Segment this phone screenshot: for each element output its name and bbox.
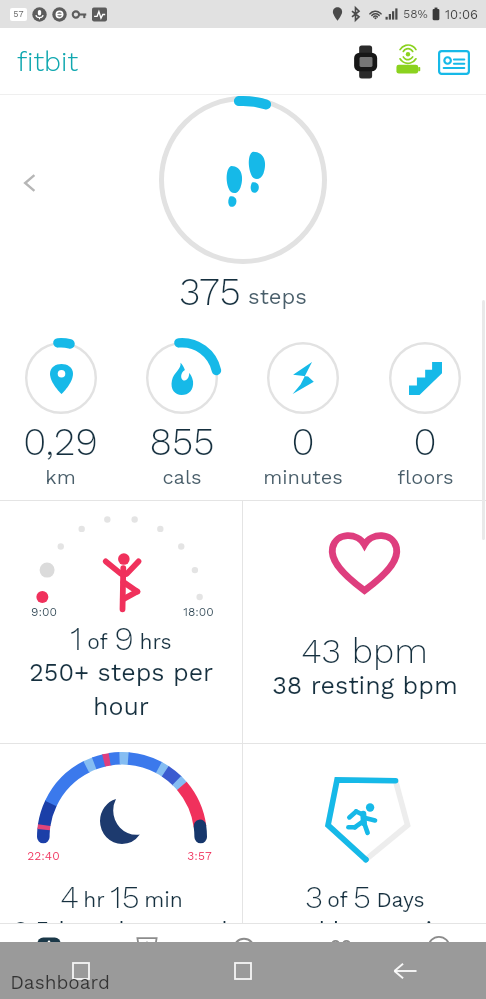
staticText: 0,29 [23, 420, 98, 465]
staticText: hr [83, 887, 105, 912]
staticText: 5 [353, 878, 371, 916]
staticText: Dashboard [10, 971, 110, 993]
staticText: 18:00 [183, 605, 214, 619]
staticText: min [144, 887, 183, 912]
staticText: minutes [263, 465, 343, 488]
button[interactable]: Account [434, 42, 474, 82]
staticText: 57 [13, 9, 24, 20]
staticText: 855 [149, 420, 215, 465]
button[interactable]: 22:40 [0, 744, 242, 994]
button[interactable]: Sync status [388, 42, 428, 82]
staticText: 9 [114, 619, 134, 658]
staticText: weekly exercise goal [243, 916, 486, 974]
staticText: 8,5 hrs sleep goal [13, 916, 229, 945]
button[interactable]: 9:00 [0, 501, 242, 743]
staticText: 38 resting bpm [272, 671, 458, 700]
button[interactable]: Recents [59, 949, 103, 993]
button[interactable]: Device [346, 42, 386, 82]
button[interactable]: 0,29 [0, 338, 121, 488]
staticText: fitbit [17, 45, 78, 78]
button[interactable]: 0 [364, 338, 486, 488]
staticText: 43 bpm [301, 630, 428, 671]
button[interactable]: 855 [121, 338, 242, 488]
button[interactable]: Back [383, 949, 427, 993]
button[interactable]: Account [389, 924, 486, 974]
staticText: of [87, 629, 108, 654]
staticText: 0 [413, 420, 437, 465]
staticText: of [327, 887, 348, 912]
staticText: 0 [291, 420, 315, 465]
button[interactable]: 0 [242, 338, 364, 488]
staticText: 250+ steps per hour [14, 658, 228, 721]
button[interactable]: Dashboard [0, 924, 98, 974]
staticText: hrs [139, 629, 172, 654]
staticText: 4 [60, 878, 79, 916]
button[interactable]: Challenges [98, 924, 195, 974]
staticText: 3 [305, 878, 323, 916]
staticText: 58% [403, 7, 428, 21]
button[interactable]: Friends [292, 924, 389, 974]
staticText: 10:06 [445, 7, 478, 22]
staticText: km [45, 465, 76, 488]
staticText: floors [397, 465, 454, 488]
staticText: 9:00 [31, 605, 57, 619]
staticText: 1 [70, 619, 82, 658]
staticText: Days [376, 887, 425, 912]
staticText: 22:40 [27, 849, 60, 863]
staticText: 15 [110, 878, 140, 916]
button[interactable]: 43 bpm [243, 501, 486, 743]
button[interactable]: 3 [243, 744, 486, 994]
staticText: 3:57 [187, 849, 212, 863]
staticText: cals [162, 465, 202, 488]
button[interactable]: Guidance [195, 924, 292, 974]
staticText: 375 [179, 270, 241, 315]
button[interactable]: Home [221, 949, 265, 993]
button[interactable]: Previous [12, 165, 48, 201]
staticText: steps [248, 284, 307, 310]
